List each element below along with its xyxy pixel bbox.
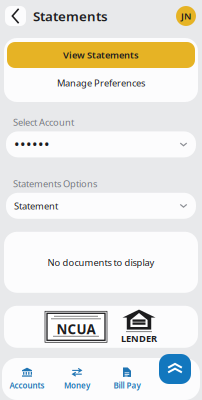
staticText: Statements [33,7,108,25]
staticText: Select Account [13,116,74,128]
button[interactable]: Back [5,6,26,26]
button[interactable]: Quick actions [159,354,191,384]
staticText: Manage Preferences [57,77,145,89]
button[interactable]: Profile [176,6,196,26]
staticText: Statements Options [13,177,97,190]
staticText: NCUA [56,320,95,338]
button[interactable]: Accounts [2,365,52,393]
button[interactable]: Manage Preferences [4,68,198,98]
staticText: JN [181,10,191,22]
staticText: Accounts [9,380,44,391]
staticText: Money [64,380,90,391]
button[interactable]: •••••• [6,131,196,157]
staticText: •••••• [14,135,50,154]
staticText: View Statements [63,49,139,61]
staticText: Statement [14,200,58,212]
button[interactable]: Statement [6,193,196,219]
staticText: No documents to display [47,256,154,268]
button[interactable]: View Statements [7,42,195,68]
staticText: Bill Pay [113,380,140,391]
button[interactable]: Money [52,365,102,393]
button[interactable]: Bill Pay [102,365,152,393]
staticText: LENDER [121,332,157,344]
